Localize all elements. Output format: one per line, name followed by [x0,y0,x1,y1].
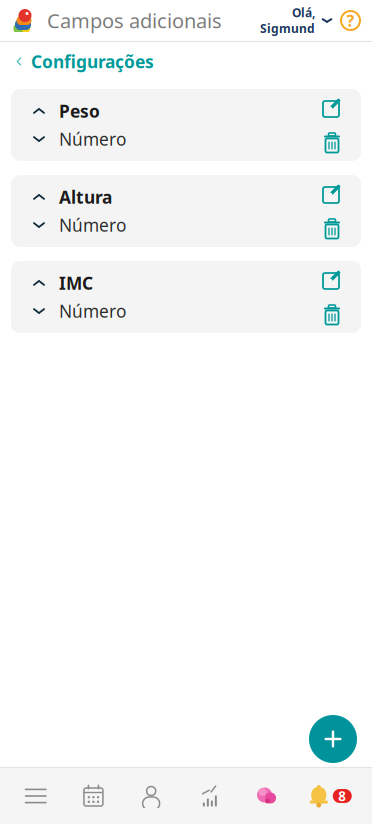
button[interactable]: Mover para baixo [28,303,50,319]
button[interactable]: Mover para cima [28,189,50,205]
button[interactable]: Adicionar campo [309,715,357,763]
button[interactable]: Perfil [129,776,173,816]
button[interactable]: Mover para baixo [28,131,50,147]
staticText: Número [59,299,126,322]
button[interactable]: Menu [14,776,58,816]
button[interactable]: Editar Peso [319,95,345,119]
button[interactable]: Notificações, 8 novas [302,776,358,816]
staticText: Sigmund [260,20,315,36]
staticText: Peso [59,99,100,122]
button[interactable]: Ajuda [333,10,372,31]
staticText: ? [346,10,354,31]
staticText: Configurações [31,50,154,73]
button[interactable]: Mover para baixo [28,217,50,233]
staticText: Número [59,127,126,150]
staticText: Altura [59,185,112,208]
button[interactable]: Excluir Altura [319,217,345,241]
staticText: IMC [59,271,93,294]
button[interactable]: Excluir Peso [319,131,345,155]
button[interactable]: Configurações [0,40,154,83]
staticText: Número [59,213,126,236]
button[interactable]: Mover para cima [28,275,50,291]
button[interactable]: Relatórios [187,776,231,816]
staticText: Campos adicionais [47,7,222,34]
button[interactable]: Mente [245,776,289,816]
button[interactable]: Olá, [260,5,333,36]
button[interactable]: Agenda [71,776,115,816]
button[interactable]: Editar IMC [319,267,345,291]
staticText: Olá, [292,5,315,20]
staticText: 8 [338,787,346,805]
button[interactable]: Editar Altura [319,181,345,205]
button[interactable]: Mover para cima [28,103,50,119]
button[interactable]: Excluir IMC [319,303,345,327]
